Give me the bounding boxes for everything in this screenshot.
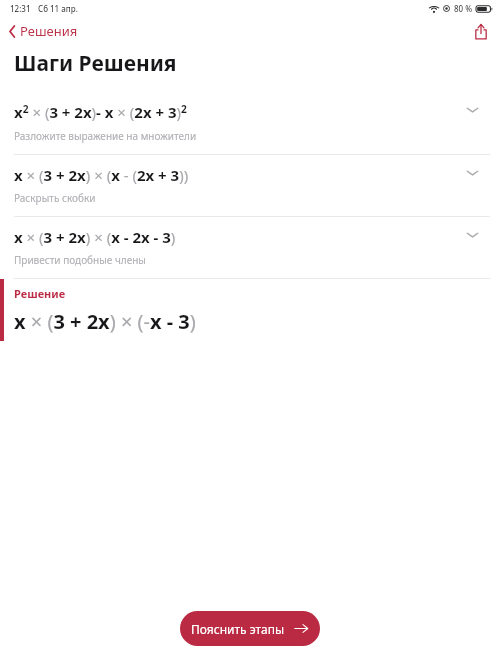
staticText: x2 × (3 + 2x)- x × (2x + 3)2 — [14, 102, 187, 123]
staticText: x × (3 + 2x) × (x - (2x + 3)) — [14, 165, 189, 185]
staticText: Сб 11 апр. — [38, 3, 78, 14]
button[interactable]: Пояснить этапы — [180, 611, 320, 646]
button[interactable]: x2 × (3 + 2x)- x × (2x + 3)2 — [0, 92, 500, 154]
staticText: x × (3 + 2x) × (-x - 3) — [14, 308, 196, 335]
staticText: 12:31 — [10, 3, 31, 14]
staticText: Раскрыть скобки — [14, 191, 96, 205]
staticText: Решение — [14, 286, 66, 301]
staticText: Пояснить этапы — [191, 621, 285, 637]
button[interactable]: x × (3 + 2x) × (x - 2x - 3) — [0, 217, 500, 278]
staticText: Шаги Решения — [14, 49, 177, 78]
staticText: 80 % — [454, 3, 473, 14]
button[interactable]: Решения — [0, 17, 88, 45]
staticText: x × (3 + 2x) × (x - 2x - 3) — [14, 227, 176, 247]
staticText: Решения — [20, 22, 78, 40]
staticText: Разложите выражение на множители — [14, 129, 197, 143]
button[interactable]: x × (3 + 2x) × (x - (2x + 3)) — [0, 155, 500, 216]
staticText: Привести подобные члены — [14, 253, 146, 267]
button[interactable]: Поделиться — [462, 19, 500, 44]
